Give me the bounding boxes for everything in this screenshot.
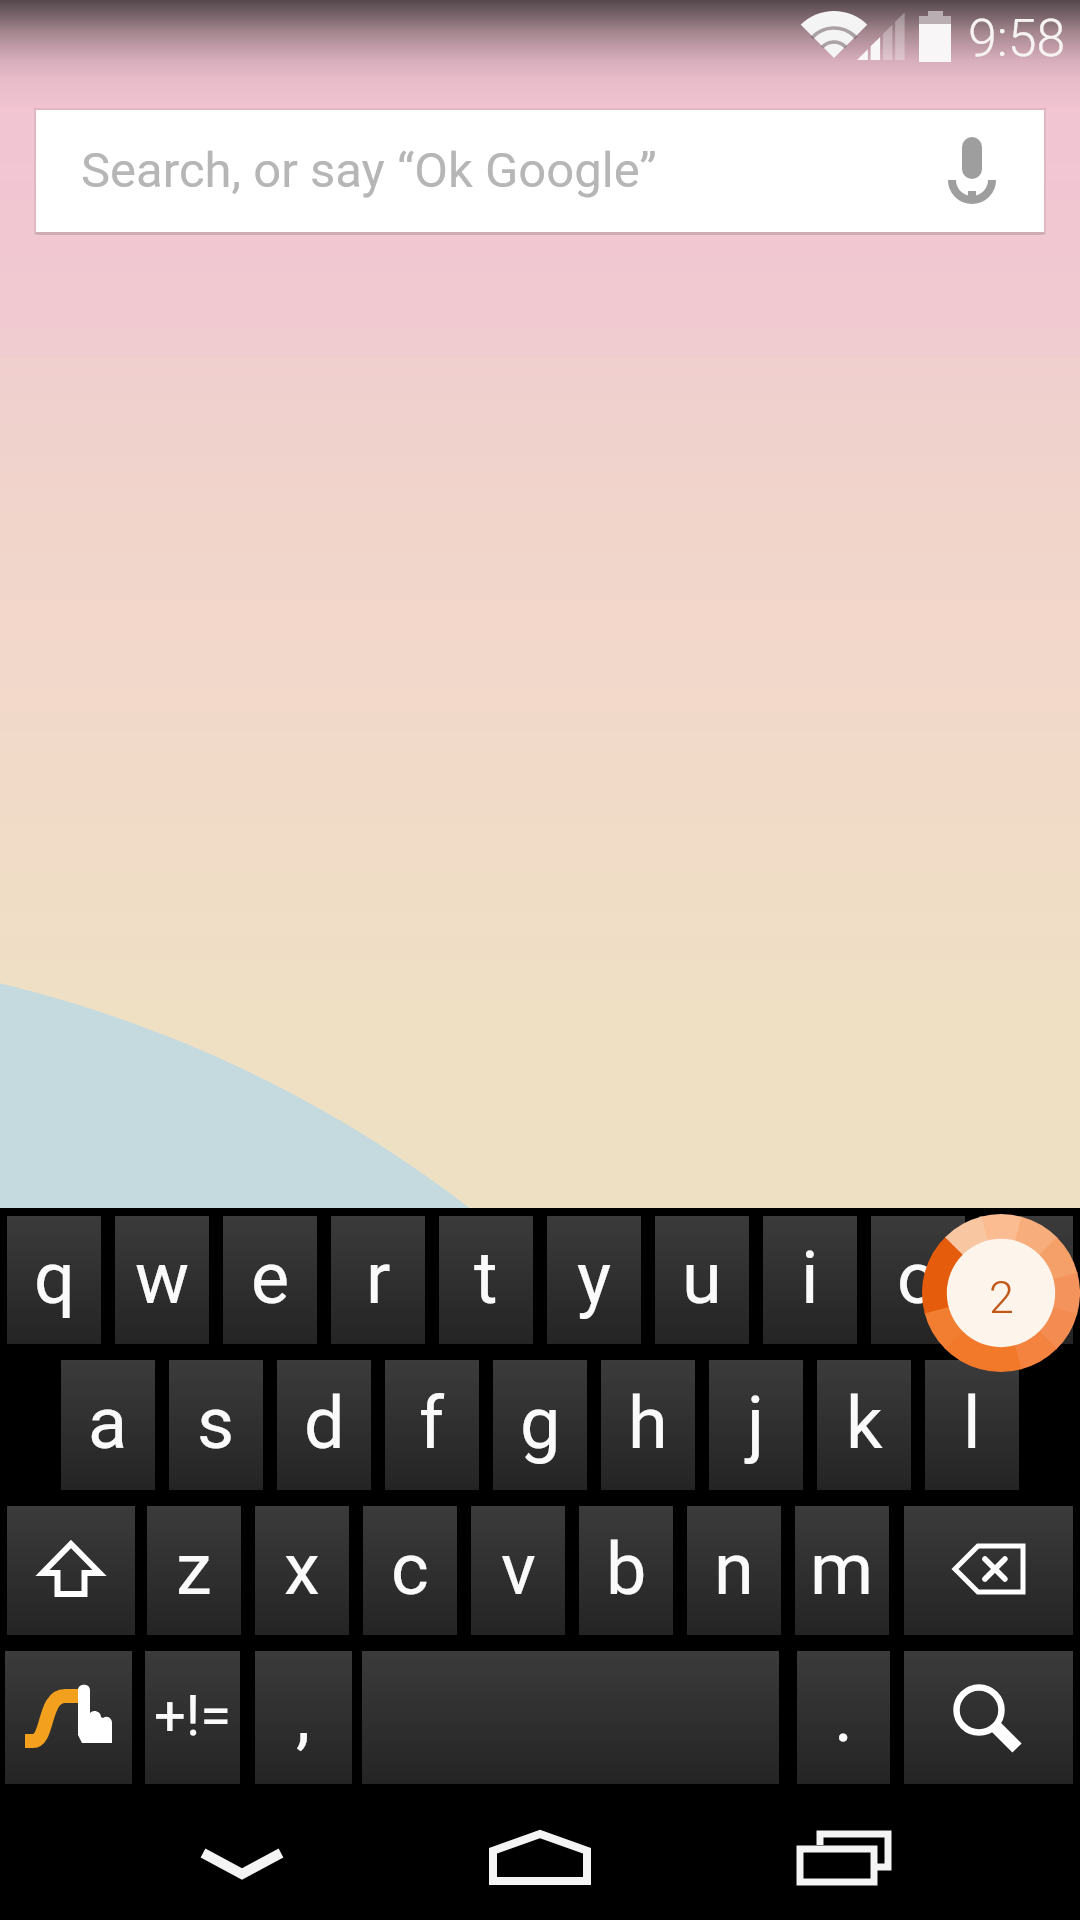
button[interactable]: b	[579, 1506, 673, 1635]
staticText: n	[714, 1527, 754, 1611]
button[interactable]: x	[255, 1506, 349, 1635]
staticText: x	[284, 1527, 320, 1611]
staticText: .	[834, 1674, 853, 1758]
staticText: 9:58	[968, 8, 1066, 69]
staticText: p	[1006, 1236, 1047, 1320]
staticText: b	[606, 1527, 647, 1611]
button[interactable]: Hide keyboard	[122, 1784, 362, 1920]
button[interactable]: e	[223, 1216, 317, 1344]
staticText: t	[474, 1236, 498, 1320]
button[interactable]: q	[7, 1216, 101, 1344]
button[interactable]: v	[471, 1506, 565, 1635]
staticText: z	[176, 1527, 212, 1611]
staticText: o	[897, 1236, 939, 1320]
button[interactable]: y	[547, 1216, 641, 1344]
staticText: l	[963, 1381, 981, 1465]
button[interactable]: s	[169, 1360, 263, 1490]
staticText: 2	[989, 1271, 1014, 1324]
button[interactable]: Search, or say “Ok Google”	[36, 110, 1044, 232]
staticText: v	[501, 1527, 536, 1611]
staticText: i	[801, 1236, 819, 1320]
staticText: Search, or say “Ok Google”	[81, 142, 657, 199]
button[interactable]: w	[115, 1216, 209, 1344]
button[interactable]: o	[871, 1216, 965, 1344]
staticText: d	[304, 1381, 345, 1465]
staticText: a	[88, 1381, 128, 1465]
button[interactable]: Search	[904, 1651, 1073, 1784]
staticText: f	[419, 1381, 445, 1465]
button[interactable]: n	[687, 1506, 781, 1635]
button[interactable]: r	[331, 1216, 425, 1344]
button[interactable]: j	[709, 1360, 803, 1490]
button[interactable]: l	[925, 1360, 1019, 1490]
button[interactable]: .	[797, 1651, 890, 1784]
button[interactable]: Backspace	[904, 1506, 1073, 1635]
button[interactable]: z	[147, 1506, 241, 1635]
staticText: q	[34, 1236, 75, 1320]
staticText: r	[366, 1236, 391, 1320]
staticText: ,	[296, 1674, 311, 1758]
button[interactable]: Recent apps	[726, 1784, 966, 1920]
button[interactable]: d	[277, 1360, 371, 1490]
button[interactable]: u	[655, 1216, 749, 1344]
button[interactable]: Gesture typing	[5, 1651, 132, 1784]
button[interactable]: k	[817, 1360, 911, 1490]
staticText: h	[628, 1381, 668, 1465]
button[interactable]: Shift	[7, 1506, 135, 1635]
staticText: j	[747, 1381, 765, 1465]
button[interactable]: c	[363, 1506, 457, 1635]
staticText: m	[810, 1527, 874, 1611]
staticText: y	[577, 1236, 612, 1320]
button[interactable]: m	[795, 1506, 889, 1635]
button[interactable]: f	[385, 1360, 479, 1490]
button[interactable]: p	[979, 1216, 1073, 1344]
staticText: c	[391, 1527, 429, 1611]
staticText: w	[135, 1236, 190, 1320]
button[interactable]: g	[493, 1360, 587, 1490]
staticText: g	[520, 1381, 561, 1465]
staticText: e	[251, 1236, 290, 1320]
button[interactable]: Voice search	[924, 110, 1044, 232]
button[interactable]: ,	[255, 1651, 352, 1784]
staticText: s	[197, 1381, 235, 1465]
button[interactable]: a	[61, 1360, 155, 1490]
staticText: k	[846, 1381, 883, 1465]
staticText: +!=	[154, 1683, 231, 1749]
button[interactable]: Home	[420, 1784, 660, 1920]
button[interactable]: t	[439, 1216, 533, 1344]
button[interactable]: +!=	[145, 1651, 240, 1784]
staticText: u	[682, 1236, 722, 1320]
button[interactable]: Space	[362, 1651, 779, 1784]
button[interactable]: i	[763, 1216, 857, 1344]
button[interactable]: h	[601, 1360, 695, 1490]
